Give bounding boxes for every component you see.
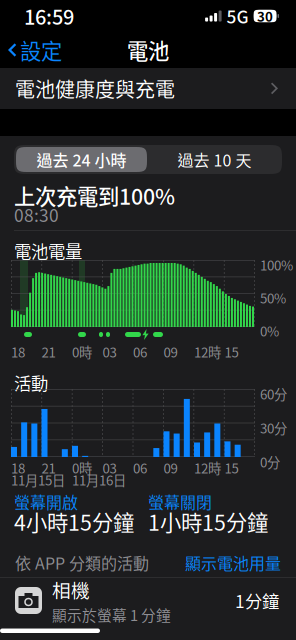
- staticText: 電池健康度與充電: [15, 74, 175, 103]
- staticText: 1小時15分鐘: [148, 506, 268, 537]
- button[interactable]: 過去 24 小時: [16, 147, 147, 172]
- staticText: 60分: [260, 384, 287, 403]
- staticText: 16:59: [24, 1, 74, 30]
- staticText: 06: [133, 342, 147, 361]
- staticText: 18: [11, 342, 25, 361]
- staticText: 12時: [194, 458, 221, 477]
- staticText: 09: [163, 342, 177, 361]
- staticText: 30: [257, 6, 273, 26]
- staticText: 0%: [260, 321, 279, 340]
- staticText: 依 APP 分類的活動: [15, 551, 149, 574]
- staticText: 15: [224, 458, 238, 477]
- staticText: 03: [102, 342, 116, 361]
- button[interactable]: 相機: [0, 578, 296, 623]
- staticText: 電池: [127, 35, 169, 65]
- staticText: 上次充電到100%: [14, 180, 175, 211]
- staticText: 0時: [72, 342, 92, 361]
- staticText: 21: [41, 342, 55, 361]
- staticText: 0分: [260, 452, 280, 471]
- staticText: 11月16日: [72, 470, 126, 489]
- button[interactable]: 設定: [0, 34, 70, 66]
- staticText: 15: [224, 342, 238, 361]
- staticText: 0時: [72, 458, 92, 477]
- staticText: 設定: [20, 35, 62, 65]
- staticText: 30分: [260, 418, 287, 437]
- staticText: 21: [41, 458, 55, 477]
- staticText: 50%: [260, 288, 286, 307]
- staticText: 4小時15分鐘: [14, 506, 134, 537]
- staticText: 顯示電池用量: [185, 551, 281, 574]
- staticText: 過去 10 天: [177, 148, 251, 171]
- staticText: 電池電量: [14, 238, 82, 263]
- staticText: 06: [133, 458, 147, 477]
- staticText: 螢幕關閉: [148, 490, 212, 513]
- staticText: 相機: [52, 576, 90, 603]
- staticText: 5G: [227, 3, 249, 29]
- staticText: 08:30: [14, 202, 59, 227]
- staticText: 100%: [260, 255, 293, 274]
- staticText: 03: [102, 458, 116, 477]
- staticText: 活動: [14, 370, 48, 395]
- staticText: 螢幕開啟: [14, 490, 78, 513]
- button[interactable]: 過去 10 天: [149, 147, 280, 172]
- button[interactable]: 顯示電池用量: [185, 551, 281, 574]
- staticText: 顯示於螢幕 1 分鐘: [52, 604, 171, 625]
- button[interactable]: 電池健康度與充電: [0, 68, 296, 109]
- staticText: 09: [163, 458, 177, 477]
- staticText: 1分鐘: [235, 588, 279, 613]
- staticText: 12時: [194, 342, 221, 361]
- staticText: 過去 24 小時: [36, 148, 126, 171]
- staticText: 18: [11, 458, 25, 477]
- staticText: 11月15日: [11, 470, 65, 489]
